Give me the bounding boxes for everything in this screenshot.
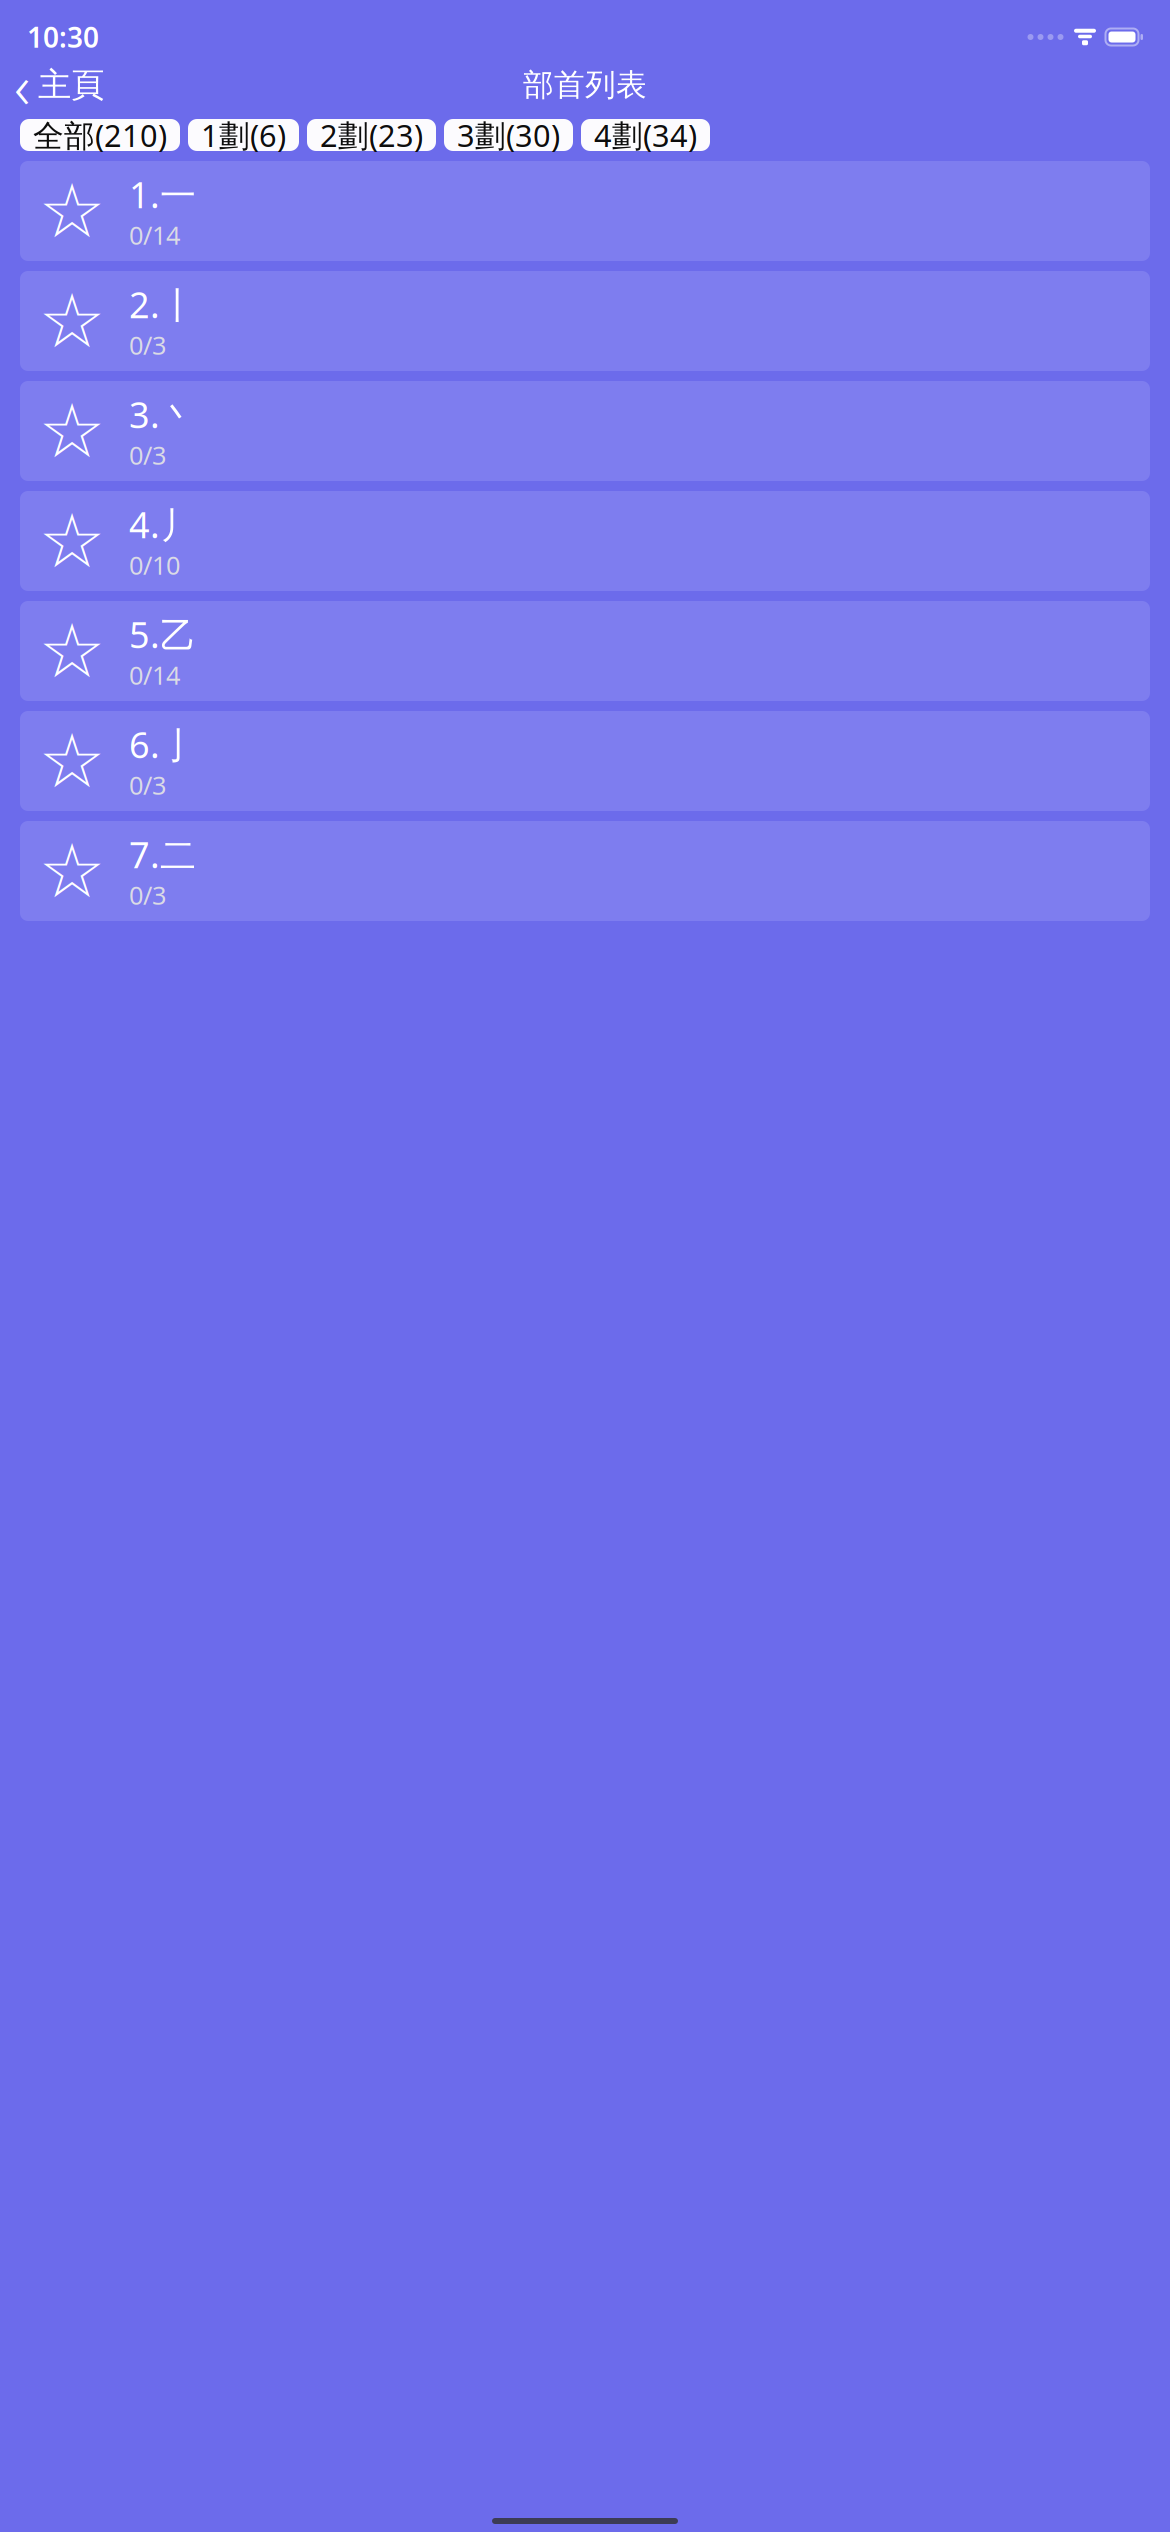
staticText: 部首列表	[523, 66, 647, 104]
staticText: 1劃(6)	[201, 115, 286, 155]
staticText: ☆	[38, 279, 105, 363]
staticText: 0/10	[129, 548, 180, 582]
staticText: ☆	[38, 609, 105, 693]
staticText: 0/3	[129, 328, 166, 362]
staticText: 全部(210)	[33, 115, 167, 155]
staticText: 0/14	[129, 218, 180, 252]
button[interactable]: 1劃(6)	[188, 119, 299, 151]
button[interactable]: ☆	[20, 491, 1150, 591]
staticText: 0/3	[129, 878, 166, 912]
staticText: 1.一	[129, 170, 196, 218]
staticText: 主頁	[38, 64, 104, 105]
staticText: ‹	[14, 44, 30, 126]
staticText: 7.二	[129, 830, 196, 878]
button[interactable]: 全部(210)	[20, 119, 180, 151]
staticText: 3劃(30)	[457, 115, 560, 155]
staticText: 2劃(23)	[320, 115, 423, 155]
button[interactable]: ☆	[20, 381, 1150, 481]
staticText: 4.丿	[129, 500, 196, 548]
staticText: ☆	[38, 389, 105, 473]
staticText: ☆	[38, 719, 105, 803]
staticText: ☆	[38, 169, 105, 253]
staticText: 3.丶	[129, 390, 196, 438]
staticText: 6.亅	[129, 720, 196, 768]
staticText: 2.丨	[129, 280, 196, 328]
button[interactable]: 3劃(30)	[444, 119, 573, 151]
button[interactable]: ☆	[20, 271, 1150, 371]
staticText: ☆	[38, 829, 105, 913]
staticText: 10:30	[27, 18, 99, 56]
staticText: 0/3	[129, 438, 166, 472]
button[interactable]: 2劃(23)	[307, 119, 436, 151]
staticText: ☆	[38, 499, 105, 583]
button[interactable]: ☆	[20, 711, 1150, 811]
staticText: 5.乙	[129, 610, 196, 658]
button[interactable]: ☆	[20, 821, 1150, 921]
button[interactable]: ☆	[20, 601, 1150, 701]
button[interactable]: ☆	[20, 161, 1150, 261]
button[interactable]: ‹	[0, 63, 114, 107]
staticText: 0/3	[129, 768, 166, 802]
staticText: 0/14	[129, 658, 180, 692]
staticText: 4劃(34)	[594, 115, 697, 155]
button[interactable]: 4劃(34)	[581, 119, 710, 151]
